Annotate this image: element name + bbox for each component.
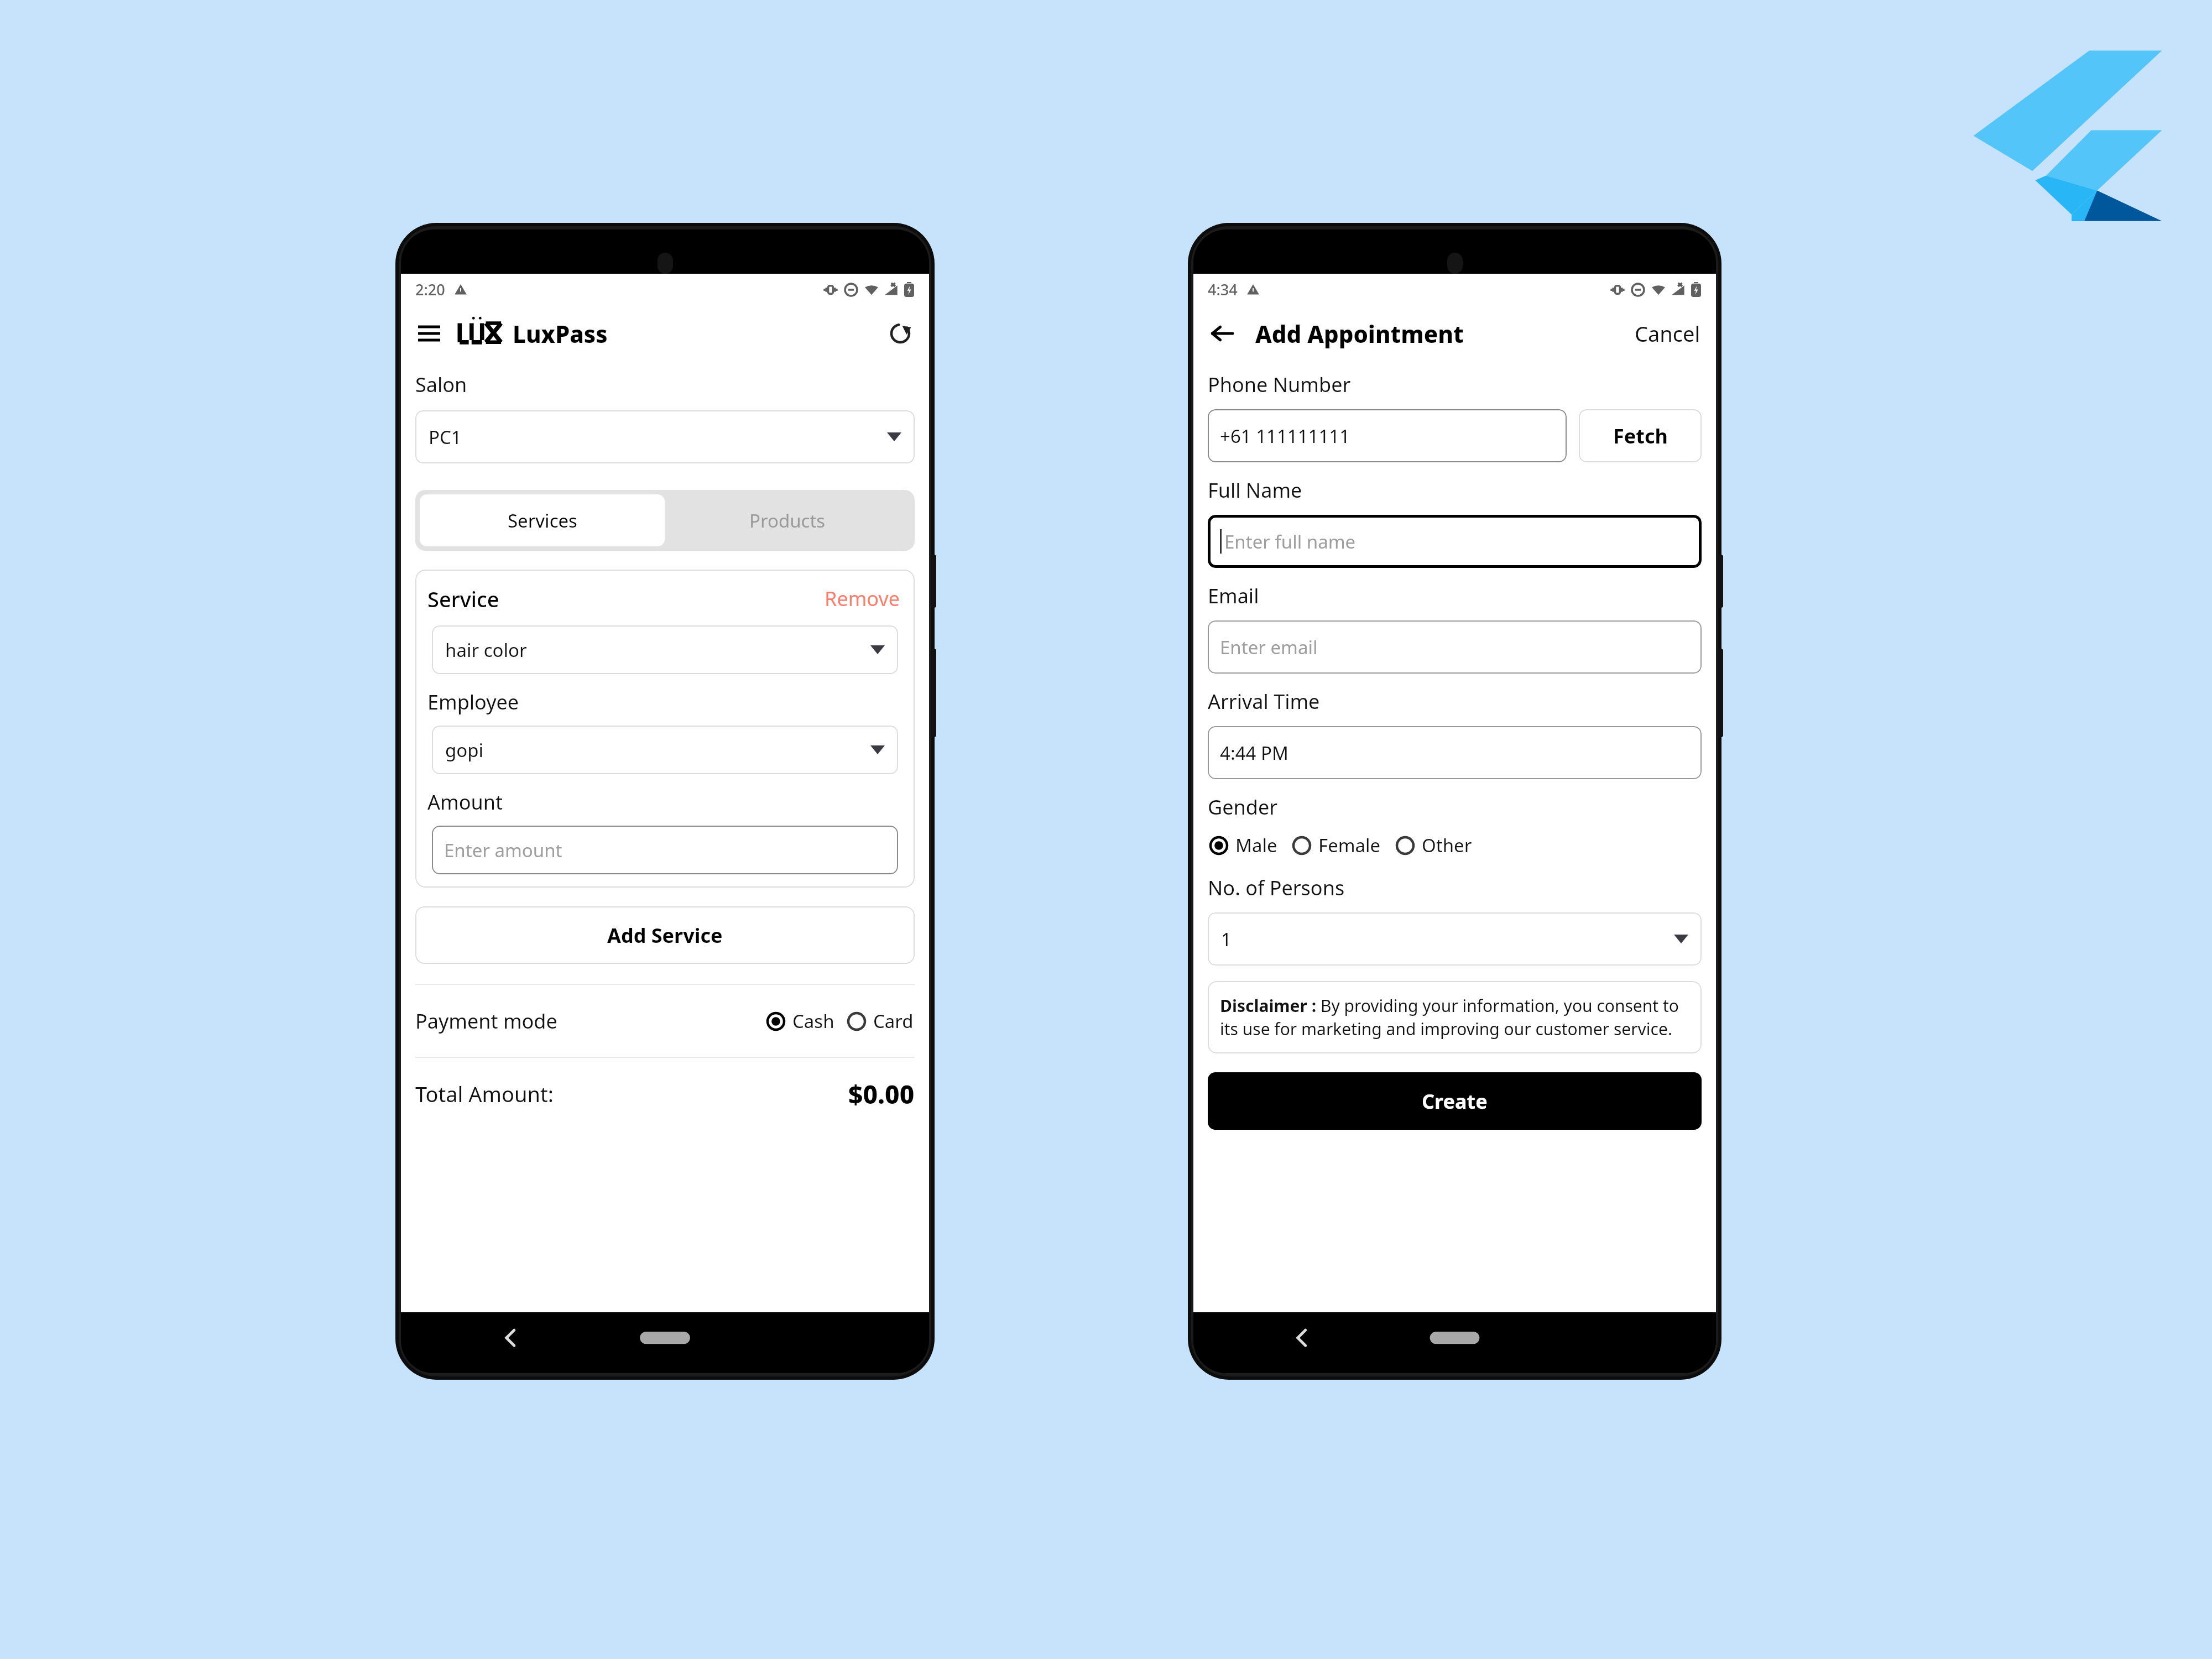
staticText: Female: [1318, 833, 1381, 858]
staticText: Add Service: [607, 922, 723, 949]
staticText: LuxPass: [513, 318, 608, 349]
button[interactable]: Services: [420, 494, 665, 546]
staticText: Full Name: [1208, 477, 1302, 504]
staticText: PC1: [429, 425, 462, 450]
staticText: gopi: [445, 738, 484, 763]
staticText: Payment mode: [415, 1008, 557, 1035]
button[interactable]: Remove: [822, 583, 902, 614]
button[interactable]: Female: [1291, 831, 1382, 860]
staticText: Salon: [415, 371, 467, 398]
button[interactable]: Enter full name: [1208, 515, 1702, 568]
button[interactable]: Add Service: [415, 906, 915, 964]
staticText: hair color: [445, 638, 527, 662]
staticText: Total Amount:: [415, 1079, 554, 1108]
button[interactable]: Cash: [765, 1006, 836, 1036]
button[interactable]: Male: [1208, 831, 1279, 860]
staticText: 2:20: [415, 279, 445, 300]
staticText: Enter amount: [444, 838, 562, 863]
staticText: Gender: [1208, 794, 1278, 821]
staticText: Cancel: [1635, 319, 1700, 348]
button[interactable]: hair color: [432, 625, 898, 674]
button[interactable]: Back: [1207, 318, 1238, 349]
staticText: Cash: [792, 1009, 834, 1034]
staticText: Remove: [825, 585, 900, 612]
staticText: Other: [1422, 833, 1472, 858]
staticText: Fetch: [1613, 422, 1668, 450]
button[interactable]: 4:44 PM: [1208, 726, 1702, 779]
button[interactable]: Create: [1208, 1072, 1702, 1130]
staticText: Products: [749, 508, 826, 533]
staticText: Services: [508, 508, 577, 533]
button[interactable]: Cancel: [1632, 317, 1703, 350]
button[interactable]: Products: [665, 494, 910, 546]
button[interactable]: Fetch: [1579, 409, 1702, 462]
staticText: Create: [1422, 1088, 1488, 1115]
staticText: 1: [1221, 927, 1232, 952]
button[interactable]: Enter email: [1208, 620, 1702, 674]
staticText: Amount: [427, 789, 503, 816]
staticText: Enter email: [1220, 635, 1318, 660]
staticText: Add Appointment: [1255, 318, 1464, 349]
staticText: Email: [1208, 582, 1259, 609]
button[interactable]: Menu: [414, 319, 444, 348]
staticText: Arrival Time: [1208, 688, 1320, 715]
staticText: Male: [1235, 833, 1277, 858]
button[interactable]: Enter amount: [432, 826, 898, 874]
button[interactable]: Card: [846, 1006, 915, 1036]
button[interactable]: Other: [1394, 831, 1473, 860]
staticText: Phone Number: [1208, 371, 1351, 398]
staticText: Card: [873, 1009, 914, 1034]
staticText: +61 111111111: [1220, 424, 1350, 448]
staticText: 4:44 PM: [1220, 740, 1288, 765]
button[interactable]: gopi: [432, 726, 898, 774]
staticText: Service: [427, 585, 499, 613]
staticText: Employee: [427, 688, 519, 716]
button[interactable]: 1: [1208, 912, 1702, 966]
staticText: No. of Persons: [1208, 874, 1345, 901]
staticText: $0.00: [848, 1077, 915, 1112]
staticText: Disclaimer : By providing your informati…: [1220, 994, 1689, 1040]
button[interactable]: +61 111111111: [1208, 409, 1567, 462]
staticText: 4:34: [1208, 279, 1238, 300]
staticText: Enter full name: [1224, 529, 1356, 554]
button[interactable]: Refresh: [885, 318, 916, 349]
button[interactable]: PC1: [415, 410, 915, 463]
